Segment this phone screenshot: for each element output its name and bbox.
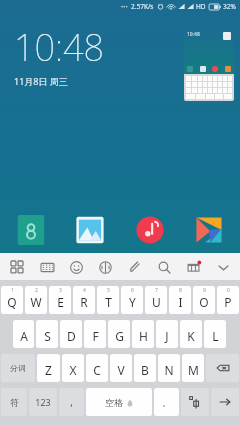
staticText: 。 — [162, 397, 171, 408]
button[interactable]: Files — [190, 211, 228, 249]
staticText: R — [80, 294, 88, 310]
button[interactable]: 。 — [154, 388, 179, 416]
button[interactable]: 1 — [1, 286, 23, 314]
staticText: 1 — [11, 287, 14, 294]
button[interactable]: 空格 — [86, 388, 152, 416]
button[interactable]: Apps — [5, 255, 29, 279]
staticText: 10:48 — [14, 23, 105, 72]
staticText: F — [92, 328, 99, 344]
button[interactable]: Delete — [206, 354, 239, 382]
button[interactable]: 符 — [1, 388, 27, 416]
button[interactable]: Next — [211, 388, 239, 416]
button[interactable]: Gallery — [71, 211, 109, 249]
button[interactable]: 10:48 — [14, 23, 105, 87]
button[interactable]: N — [158, 354, 180, 382]
staticText: 9 — [203, 287, 206, 294]
button[interactable]: M — [182, 354, 204, 382]
button[interactable]: Emoji — [64, 255, 88, 279]
staticText: Y — [129, 294, 136, 310]
staticText: V — [117, 362, 125, 378]
button[interactable]: Keyboard — [35, 255, 59, 279]
staticText: 7 — [155, 287, 158, 294]
staticText: 10:48 — [187, 31, 200, 38]
staticText: U — [152, 294, 161, 310]
staticText: 分词 — [10, 363, 26, 373]
staticText: 8 — [179, 287, 182, 294]
staticText: 4 — [83, 287, 86, 294]
button[interactable]: 2 — [25, 286, 47, 314]
button[interactable]: G — [108, 320, 130, 348]
button[interactable]: 8 — [169, 286, 191, 314]
button[interactable]: S — [36, 320, 58, 348]
staticText: 符 — [10, 397, 19, 408]
button[interactable]: 6 — [121, 286, 143, 314]
staticText: P — [224, 294, 232, 310]
button[interactable]: J — [156, 320, 178, 348]
staticText: N — [164, 362, 174, 378]
staticText: Q — [7, 294, 17, 310]
staticText: Z — [45, 362, 52, 378]
button[interactable]: Search — [152, 255, 176, 279]
staticText: I — [178, 294, 183, 310]
button[interactable]: Calendar — [12, 211, 50, 249]
staticText: 3 — [59, 287, 62, 294]
staticText: ••• — [121, 3, 128, 11]
button[interactable]: Z — [37, 354, 60, 382]
staticText: K — [187, 328, 195, 344]
button[interactable]: 分词 — [1, 354, 35, 382]
staticText: 123 — [35, 396, 51, 408]
button[interactable]: 7 — [145, 286, 167, 314]
button[interactable]: 5 — [97, 286, 119, 314]
button[interactable]: C — [86, 354, 108, 382]
staticText: B — [141, 362, 149, 378]
staticText: HD — [196, 2, 206, 11]
button[interactable]: 9 — [193, 286, 215, 314]
staticText: 5 — [107, 287, 110, 294]
button[interactable]: A — [13, 320, 34, 348]
staticText: E — [57, 294, 64, 310]
staticText: 2.57K/s — [131, 2, 154, 11]
button[interactable]: 4 — [73, 286, 95, 314]
button[interactable]: F — [84, 320, 106, 348]
staticText: 0 — [227, 287, 230, 294]
staticText: O — [199, 294, 209, 310]
staticText: 2 — [35, 287, 38, 294]
button[interactable]: K — [180, 320, 202, 348]
button[interactable]: 3 — [49, 286, 71, 314]
staticText: J — [165, 328, 169, 344]
staticText: H — [139, 328, 148, 344]
staticText: S — [44, 328, 51, 344]
button[interactable]: Chinese English toggle — [181, 388, 209, 416]
staticText: C — [93, 362, 101, 378]
button[interactable]: 0 — [217, 286, 239, 314]
staticText: T — [105, 294, 112, 310]
staticText: D — [67, 328, 76, 344]
button[interactable]: Music — [131, 211, 169, 249]
button[interactable]: Clipboard — [123, 255, 147, 279]
button[interactable]: L — [204, 320, 226, 348]
button[interactable]: X — [62, 354, 84, 382]
button[interactable]: H — [132, 320, 154, 348]
button[interactable]: , — [59, 388, 84, 416]
button[interactable]: V — [110, 354, 132, 382]
button[interactable]: Store — [181, 255, 205, 279]
staticText: 32% — [223, 2, 236, 11]
staticText: L — [212, 328, 219, 344]
button[interactable]: 123 — [29, 388, 57, 416]
button[interactable]: Hide keyboard — [211, 255, 235, 279]
staticText: A — [20, 328, 28, 344]
button[interactable]: Voice — [93, 255, 117, 279]
staticText: 6 — [131, 287, 134, 294]
staticText: 11月8日 周三 — [14, 75, 68, 87]
staticText: W — [30, 294, 42, 310]
button[interactable]: Screenshot preview — [184, 29, 234, 101]
staticText: M — [188, 362, 199, 378]
button[interactable]: B — [134, 354, 156, 382]
button[interactable]: D — [60, 320, 82, 348]
staticText: X — [69, 362, 77, 378]
staticText: G — [115, 328, 124, 344]
staticText: , — [70, 395, 73, 409]
staticText: 空格 — [105, 397, 123, 408]
